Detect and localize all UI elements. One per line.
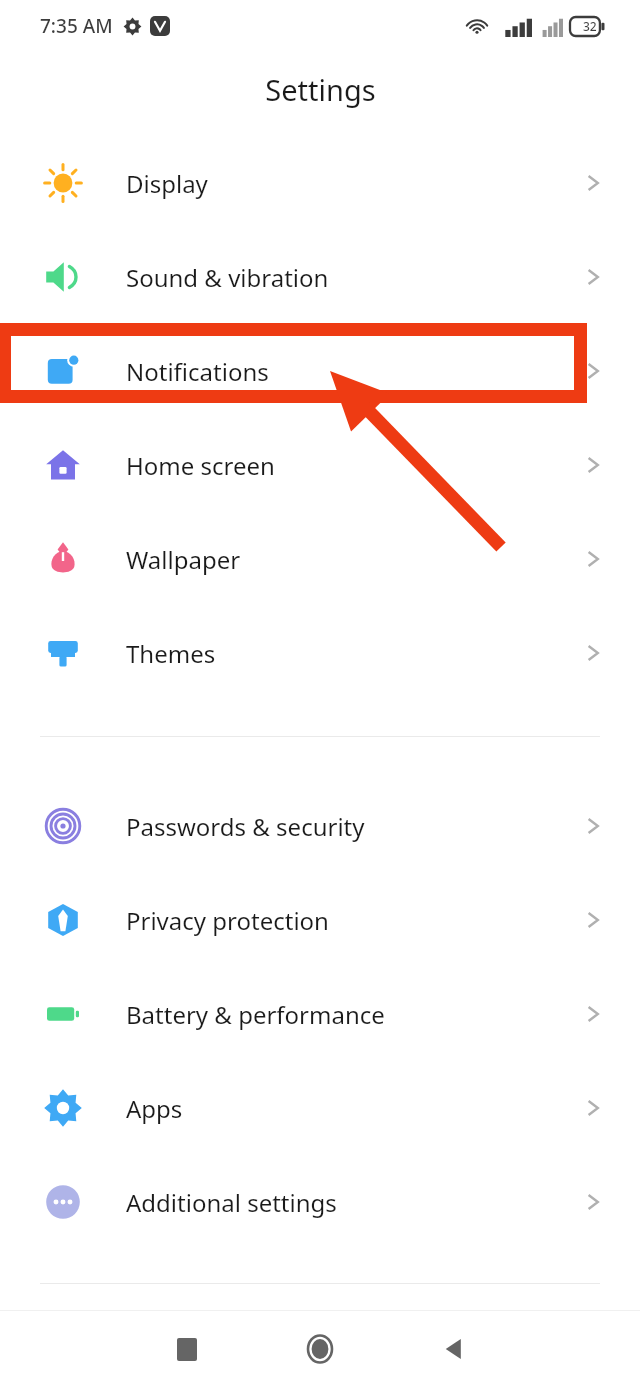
button[interactable]: Additional settings [0, 1155, 640, 1249]
staticText: Home screen [126, 449, 275, 482]
staticText: 32 [583, 18, 597, 34]
staticText: Battery & performance [126, 998, 385, 1031]
staticText: Sound & vibration [126, 261, 329, 294]
button[interactable]: Wallpaper [0, 512, 640, 606]
button[interactable]: Home [292, 1321, 348, 1377]
button[interactable]: Recent apps [159, 1321, 215, 1377]
staticText: Display [126, 167, 208, 200]
button[interactable]: Sound & vibration [0, 230, 640, 324]
staticText: Additional settings [126, 1186, 337, 1219]
button[interactable]: Home screen [0, 418, 640, 512]
button[interactable]: Privacy protection [0, 873, 640, 967]
staticText: 7:35 AM [40, 13, 113, 39]
staticText: Wallpaper [126, 543, 241, 576]
button[interactable]: Display [0, 136, 640, 230]
staticText: Passwords & security [126, 810, 365, 843]
button[interactable]: Passwords & security [0, 779, 640, 873]
staticText: Privacy protection [126, 904, 329, 937]
staticText: Settings [265, 70, 376, 109]
staticText: Notifications [126, 355, 269, 388]
button[interactable]: Notifications [0, 324, 640, 418]
staticText: Themes [126, 637, 216, 670]
button[interactable]: Back [425, 1321, 481, 1377]
button[interactable]: Themes [0, 606, 640, 700]
staticText: Apps [126, 1092, 183, 1125]
button[interactable]: Apps [0, 1061, 640, 1155]
button[interactable]: Battery & performance [0, 967, 640, 1061]
